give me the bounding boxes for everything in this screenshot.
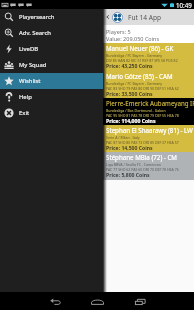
staticText: Serie A / Milan - Italy <box>106 135 140 140</box>
staticText: 10:49 <box>176 1 192 9</box>
staticText: Value: 209,050 Coins <box>106 35 160 42</box>
button[interactable]: Stephan El Shaarawy (81) - LW <box>103 125 194 152</box>
staticText: Price: 43,250 Coins <box>106 63 153 70</box>
staticText: Playersearch <box>19 13 55 21</box>
button[interactable]: LiveDB <box>0 41 103 57</box>
staticText: DIV 85 HAN 82 KIC 51 REF 87 SPE 58 POS 8… <box>106 58 178 63</box>
button[interactable]: Stéphane MBia (72) - CM <box>103 152 194 180</box>
staticText: Players: 5 <box>106 28 131 35</box>
button[interactable]: My Squad <box>0 57 103 73</box>
staticText: PAC 77 SHO 62 PAS 60 DRI 70 DEF 78 HEA 7… <box>106 167 179 172</box>
staticText: Bundesliga / FC Bayern - Germany <box>106 81 163 86</box>
button[interactable]: Home <box>78 292 116 310</box>
staticText: My Squad <box>19 61 47 69</box>
staticText: PAC 83 SHO 79 PAS 80 DRI 90 DEF 51 HEA 6… <box>106 86 179 91</box>
button[interactable]: Back <box>36 292 74 310</box>
staticText: Stephan El Shaarawy (81) - LW <box>106 126 193 134</box>
staticText: PAC 87 SHO 80 PAS 73 DRI 85 DEF 37 HEA 5… <box>106 140 179 145</box>
button[interactable]: Help <box>0 89 103 105</box>
staticText: Stéphane MBia (72) - CM <box>106 153 177 161</box>
button[interactable]: Wishlist <box>0 73 103 89</box>
button[interactable]: Adv. Search <box>0 25 103 41</box>
staticText: Mario Götze (85) - CAM <box>106 72 173 80</box>
button[interactable]: Exit <box>0 105 103 121</box>
staticText: Price: 14,500 Coins <box>106 145 153 152</box>
staticText: LiveDB <box>19 45 39 53</box>
staticText: Fut 14 App <box>128 13 162 22</box>
staticText: Help <box>19 93 32 101</box>
button[interactable]: Manuel Neuer (86) - GK <box>103 43 194 71</box>
staticText: Adv. Search <box>19 29 51 37</box>
staticText: Price: 114,000 Coins <box>106 118 156 125</box>
button[interactable]: Recent apps <box>121 292 159 310</box>
staticText: Price: 5,800 Coins <box>106 172 150 179</box>
staticText: Bundesliga / Bor. Dortmund - Gabon <box>106 108 166 113</box>
staticText: Exit <box>19 109 30 117</box>
button[interactable]: Navigate up <box>103 9 112 25</box>
staticText: Bundesliga / FC Bayern - Germany <box>106 53 163 58</box>
staticText: Liga BBVA / Sevilla FC - Cameroon <box>106 162 161 167</box>
button[interactable]: Playersearch <box>0 9 103 25</box>
staticText: Price: 33,500 Coins <box>106 91 153 98</box>
staticText: Manuel Neuer (86) - GK <box>106 44 174 52</box>
button[interactable]: Pierre-Emerick Aubameyang IF <box>103 98 194 125</box>
staticText: PAC 95 SHO 81 PAS 78 DRI 79 DEF 55 HEA 7… <box>106 113 179 118</box>
staticText: Pierre-Emerick Aubameyang IF <box>106 99 194 107</box>
staticText: Wishlist <box>19 77 41 85</box>
button[interactable]: Mario Götze (85) - CAM <box>103 71 194 98</box>
